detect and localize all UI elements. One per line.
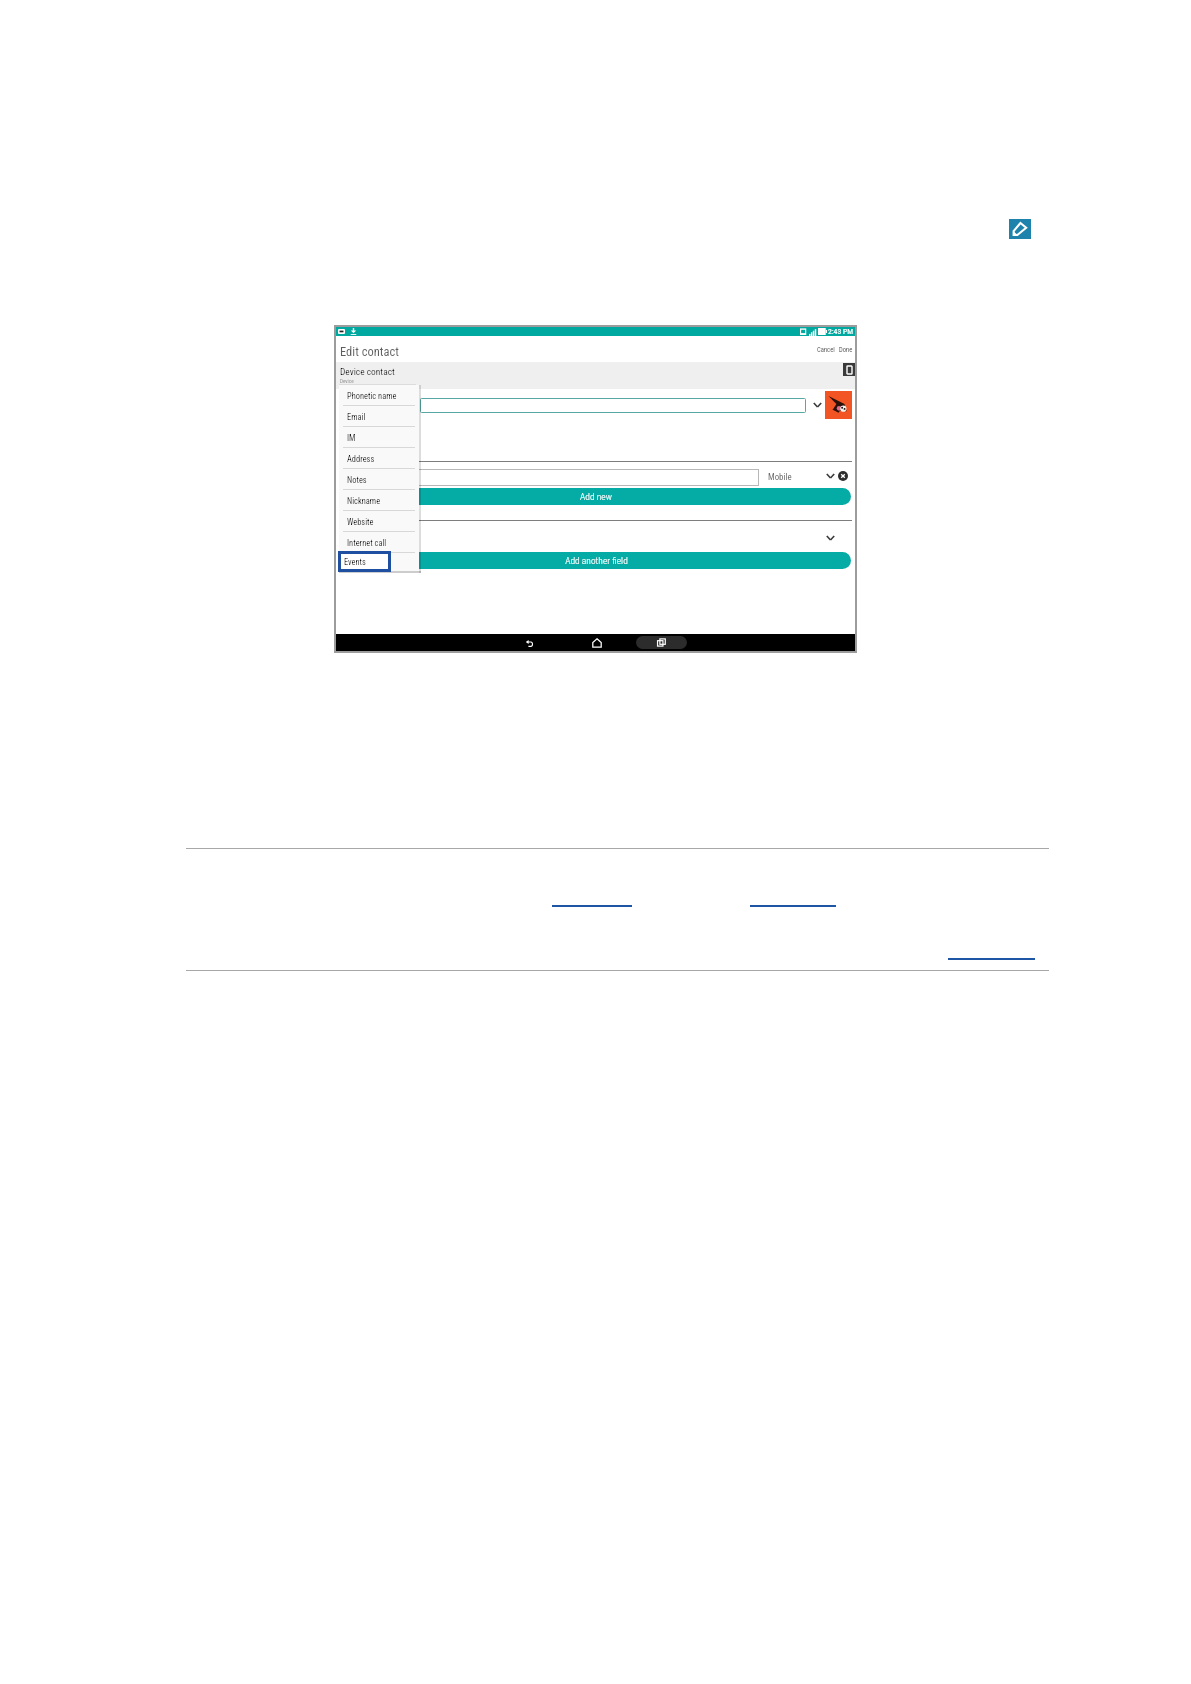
staticText: Device contact bbox=[340, 366, 395, 377]
button[interactable]: Back bbox=[518, 634, 542, 651]
staticText: Notes bbox=[347, 475, 367, 485]
staticText: Events bbox=[344, 557, 366, 567]
staticText: Internet call bbox=[347, 538, 387, 548]
button[interactable] bbox=[420, 398, 806, 413]
staticText: Edit contact bbox=[340, 344, 399, 359]
button[interactable]: Add new bbox=[341, 488, 851, 505]
button[interactable]: Notes bbox=[339, 469, 419, 490]
button[interactable]: IM bbox=[339, 427, 419, 448]
button[interactable]: Cancel bbox=[815, 344, 837, 356]
button[interactable]: Home bbox=[585, 634, 609, 651]
staticText: Device bbox=[340, 378, 354, 384]
button[interactable]: Edit bbox=[1009, 219, 1031, 239]
button[interactable]: Phonetic name bbox=[339, 385, 419, 406]
staticText: Events bbox=[347, 557, 369, 567]
button[interactable]: Events bbox=[338, 551, 391, 572]
button[interactable] bbox=[340, 469, 759, 486]
staticText: Address bbox=[347, 454, 375, 464]
button[interactable]: Website bbox=[339, 511, 419, 532]
button[interactable]: Contact photo bbox=[825, 391, 852, 419]
button[interactable]: Email bbox=[339, 406, 419, 427]
button[interactable]: Internet call bbox=[339, 532, 419, 553]
staticText: Add new bbox=[580, 491, 612, 502]
staticText: Nickname bbox=[347, 496, 381, 506]
staticText: IM bbox=[347, 433, 356, 443]
staticText: Add another field bbox=[565, 555, 628, 566]
button[interactable]: Nickname bbox=[339, 490, 419, 511]
staticText: Mobile bbox=[768, 472, 792, 482]
button[interactable]: Remove field bbox=[838, 471, 848, 481]
staticText: Cancel bbox=[817, 346, 835, 354]
button[interactable]: Add another field bbox=[341, 552, 851, 569]
button[interactable]: Events bbox=[339, 553, 419, 571]
staticText: 2:43 PM bbox=[828, 327, 854, 336]
button[interactable]: Done bbox=[837, 344, 855, 356]
button[interactable]: Device bbox=[843, 363, 856, 376]
button[interactable]: Address bbox=[339, 448, 419, 469]
button[interactable]: Recent apps bbox=[636, 636, 687, 649]
staticText: Phonetic name bbox=[347, 391, 397, 401]
staticText: Email bbox=[347, 412, 366, 422]
staticText: Website bbox=[347, 517, 374, 527]
staticText: Done bbox=[839, 346, 853, 354]
